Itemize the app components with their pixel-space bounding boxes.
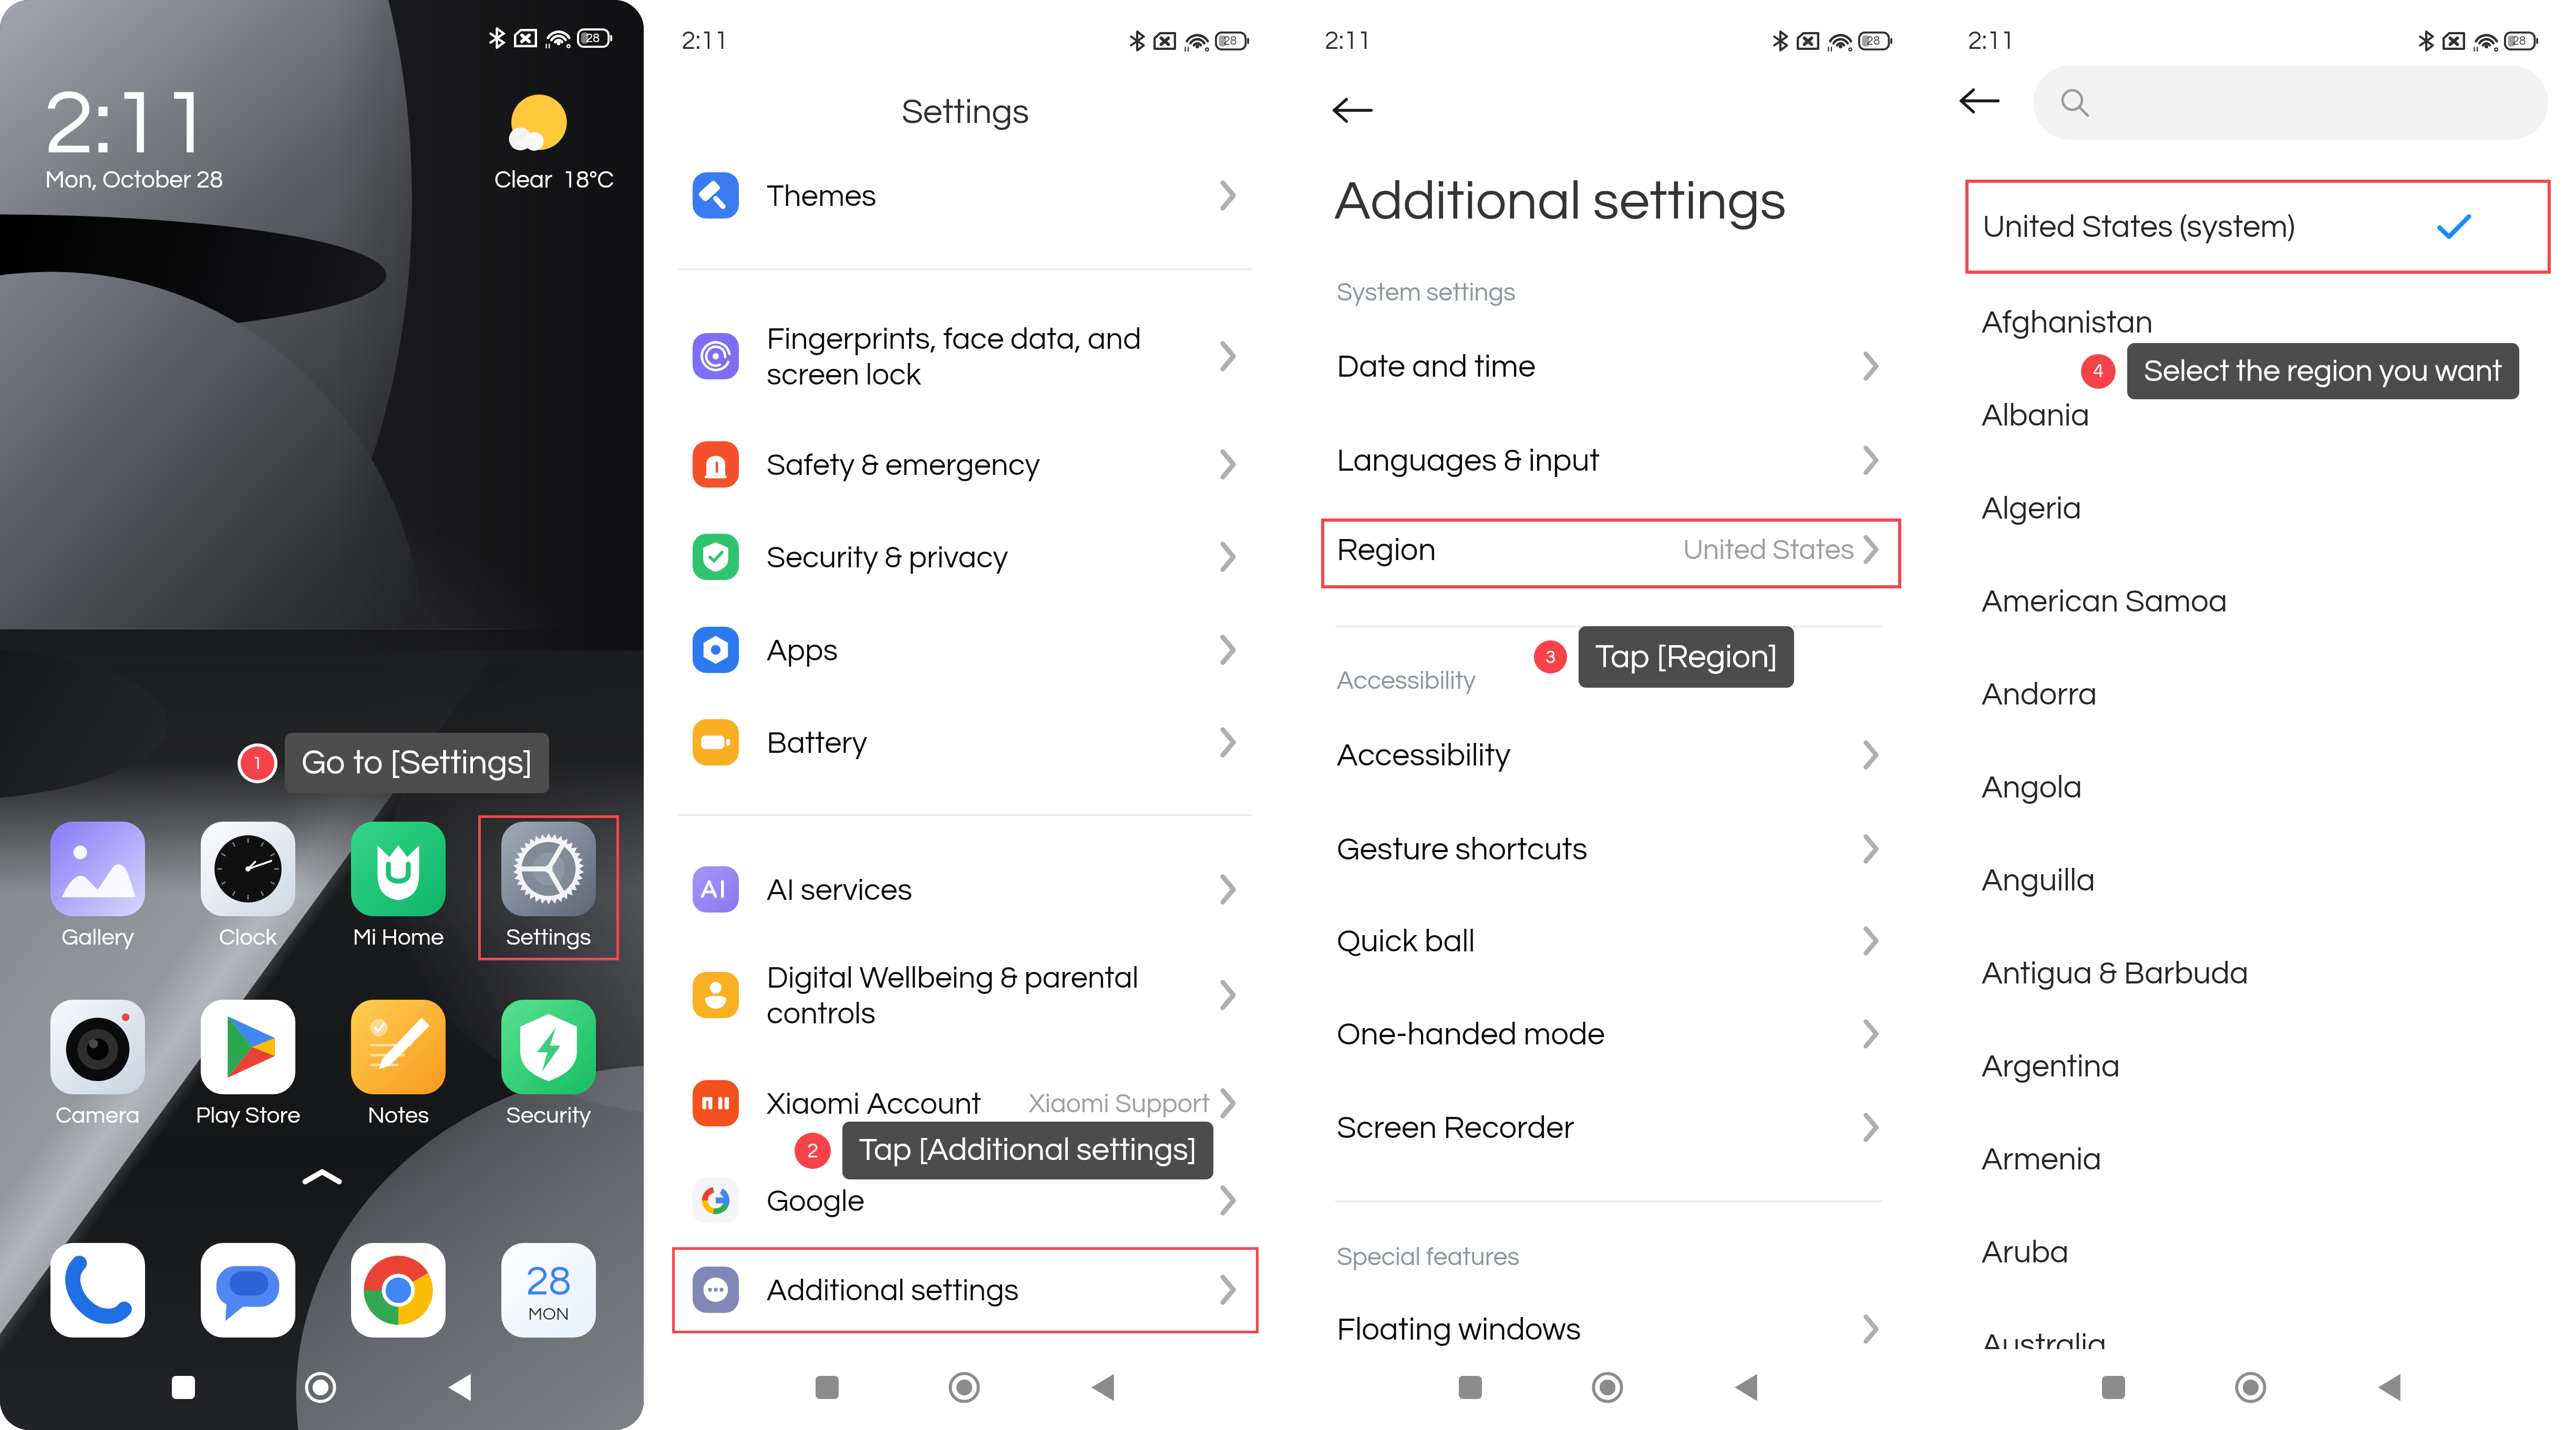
staticText: 4 (2093, 361, 2104, 381)
staticText: Safety & emergency (767, 450, 1040, 481)
button[interactable]: Home (289, 1356, 352, 1419)
button[interactable]: Home (933, 1356, 996, 1419)
staticText: Fingerprints, face data, and (767, 324, 1141, 355)
button[interactable]: Search (2033, 66, 2548, 140)
button[interactable]: Clock (201, 822, 295, 916)
staticText: Additional settings (1334, 174, 1787, 230)
button[interactable]: Back (1715, 1356, 1778, 1419)
button[interactable]: Additional settings (675, 1244, 1255, 1336)
button[interactable]: Recent apps (796, 1356, 859, 1419)
button[interactable]: Algeria (1962, 462, 2544, 555)
button[interactable]: Home (1576, 1356, 1639, 1419)
button[interactable]: Step 2 (795, 1133, 831, 1169)
staticText: Clear 18°C (494, 168, 614, 192)
button[interactable]: Settings (501, 822, 596, 916)
button[interactable]: AI services (675, 843, 1255, 936)
button[interactable]: Argentina (1962, 1020, 2544, 1113)
staticText: System settings (1337, 280, 1516, 306)
button[interactable]: Back (1949, 70, 2010, 131)
button[interactable]: Security & privacy (675, 511, 1255, 603)
button[interactable]: Floating windows (1318, 1283, 1899, 1375)
button[interactable]: Safety & emergency (675, 418, 1255, 511)
staticText: Angola (1982, 772, 2083, 804)
staticText: Tap [Additional settings] (859, 1134, 1197, 1167)
staticText: 28 (1223, 35, 1237, 47)
staticText: Select the region you want (2144, 356, 2502, 387)
staticText: Gesture shortcuts (1337, 834, 1588, 866)
button[interactable]: Mi Home (351, 822, 446, 916)
staticText: Settings (475, 926, 622, 949)
button[interactable]: One-handed mode (1318, 988, 1899, 1080)
button[interactable]: Fingerprints, face data, and screen lock (675, 310, 1255, 402)
button[interactable]: Gallery (50, 822, 145, 916)
button[interactable]: Languages & input (1318, 414, 1899, 506)
button[interactable]: Xiaomi Account (675, 1057, 1255, 1149)
button[interactable]: Home (2219, 1356, 2282, 1419)
button[interactable]: Gesture shortcuts (1318, 803, 1899, 895)
staticText: 2:11 (1968, 28, 2015, 54)
button[interactable]: Messages (201, 1243, 295, 1338)
button[interactable]: Recent apps (2082, 1356, 2145, 1419)
button[interactable]: Back (1071, 1356, 1135, 1419)
button[interactable]: Google (675, 1154, 1255, 1247)
button[interactable]: Albania (1962, 369, 2544, 462)
button[interactable]: Angola (1962, 741, 2544, 834)
button[interactable]: Go to [Settings] (285, 733, 549, 793)
button[interactable]: Step 4 (2081, 354, 2116, 389)
button[interactable]: Quick ball (1318, 895, 1899, 987)
staticText: Go to [Settings] (302, 746, 532, 781)
staticText: Google (767, 1186, 865, 1217)
button[interactable]: Back (428, 1356, 491, 1419)
button[interactable]: Tap [Additional settings] (842, 1122, 1213, 1179)
button[interactable]: Security (501, 1000, 596, 1094)
button[interactable]: Battery (675, 696, 1255, 789)
button[interactable]: Region (1318, 503, 1899, 596)
staticText: controls (767, 998, 876, 1030)
button[interactable]: Camera (50, 1000, 145, 1094)
button[interactable]: Calendar (501, 1243, 596, 1338)
button[interactable]: Digital Wellbeing & parental controls (675, 949, 1255, 1041)
staticText: Camera (24, 1104, 171, 1127)
button[interactable]: Chrome (351, 1243, 446, 1338)
button[interactable]: Select the region you want (2127, 343, 2519, 399)
staticText: Gallery (24, 926, 171, 949)
staticText: 28 (1867, 35, 1880, 47)
button[interactable]: Australia (1962, 1299, 2544, 1392)
button[interactable]: United States (system) (1965, 180, 2551, 274)
button[interactable]: Themes (675, 149, 1255, 242)
button[interactable]: Step 3 (1534, 640, 1567, 673)
staticText: Additional settings (767, 1275, 1019, 1307)
button[interactable]: Back (1322, 80, 1383, 141)
button[interactable]: Recent apps (1439, 1356, 1502, 1419)
button[interactable]: Anguilla (1962, 834, 2544, 927)
button[interactable]: Antigua & Barbuda (1962, 927, 2544, 1020)
button[interactable]: Screen Recorder (1318, 1081, 1899, 1174)
staticText: 2:11 (1325, 28, 1372, 54)
button[interactable]: Aruba (1962, 1206, 2544, 1299)
button[interactable]: Settings (478, 815, 619, 960)
button[interactable]: Afghanistan (1962, 276, 2544, 369)
staticText: Australia (1982, 1330, 2107, 1362)
button[interactable]: Armenia (1962, 1113, 2544, 1206)
button[interactable]: Date and time (1318, 320, 1899, 412)
staticText: 3 (1545, 648, 1556, 667)
button[interactable]: Back (2358, 1356, 2421, 1419)
button[interactable]: Phone (50, 1243, 145, 1338)
staticText: 2 (807, 1141, 819, 1162)
button[interactable]: Notes (351, 1000, 446, 1094)
button[interactable]: Recent apps (152, 1356, 215, 1419)
staticText: Quick ball (1337, 926, 1475, 958)
button[interactable]: Andorra (1962, 648, 2544, 741)
staticText: Albania (1982, 400, 2090, 432)
button[interactable]: Accessibility (1318, 709, 1899, 801)
button[interactable]: Step 1 (241, 747, 274, 780)
button[interactable]: Apps (675, 604, 1255, 696)
button[interactable]: Play Store (201, 1000, 295, 1094)
staticText: 1 (252, 754, 263, 773)
staticText: 28 (2512, 35, 2526, 47)
button[interactable]: Tap [Region] (1579, 626, 1794, 688)
button[interactable]: American Samoa (1962, 555, 2544, 648)
staticText: American Samoa (1982, 586, 2228, 618)
staticText: Apps (767, 635, 838, 667)
staticText: Argentina (1982, 1051, 2120, 1083)
